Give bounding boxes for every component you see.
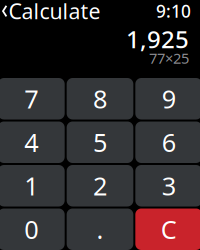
button[interactable]: Clear — [135, 208, 200, 250]
button[interactable]: 8 — [67, 78, 133, 119]
button[interactable]: 2 — [67, 165, 133, 206]
staticText: 1 — [24, 169, 38, 202]
button[interactable]: 0 — [0, 208, 65, 250]
staticText: 9 — [162, 82, 176, 115]
button[interactable]: 9 — [135, 78, 200, 119]
staticText: 6 — [162, 125, 176, 159]
button[interactable]: 5 — [67, 121, 133, 163]
button[interactable]: Current time 9:10 — [156, 0, 200, 24]
staticText: 0 — [24, 212, 38, 246]
staticText: . — [96, 212, 103, 246]
button[interactable]: 3 — [135, 165, 200, 206]
staticText: 8 — [93, 82, 107, 115]
staticText: 7 — [24, 82, 38, 115]
button[interactable]: 4 — [0, 121, 65, 163]
button[interactable]: 6 — [135, 121, 200, 163]
staticText: 5 — [93, 125, 107, 159]
staticText: 9:10 — [156, 0, 191, 22]
button[interactable]: Back to Calculate — [0, 0, 100, 27]
staticText: 77×25 — [149, 48, 189, 68]
staticText: 2 — [93, 169, 107, 202]
button[interactable]: 7 — [0, 78, 65, 119]
staticText: C — [161, 212, 177, 246]
button[interactable]: Decimal point — [67, 208, 133, 250]
staticText: Calculate — [8, 0, 100, 25]
staticText: 4 — [24, 125, 38, 159]
button[interactable]: 1 — [0, 165, 65, 206]
staticText: 1,925 — [126, 23, 189, 55]
staticText: 3 — [162, 169, 176, 202]
